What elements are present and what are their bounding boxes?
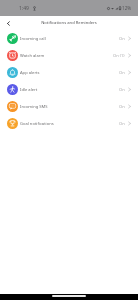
staticText: Incoming call: [20, 36, 46, 42]
staticText: On: [119, 121, 125, 127]
staticText: App alerts: [20, 70, 40, 76]
staticText: Goal notifications: [20, 121, 54, 127]
button[interactable]: Watch alarm: [0, 47, 138, 64]
staticText: On (1): [113, 53, 125, 59]
button[interactable]: Back: [2, 17, 15, 30]
staticText: Watch alarm: [20, 53, 45, 59]
staticText: 12%: [122, 5, 132, 11]
staticText: Incoming SMS: [20, 104, 48, 110]
button[interactable]: Incoming SMS: [0, 98, 138, 115]
button[interactable]: Incoming call: [0, 30, 138, 47]
button[interactable]: Goal notifications: [0, 115, 138, 132]
staticText: On: [119, 36, 125, 42]
staticText: Idle alert: [20, 87, 38, 93]
staticText: Notifications and Reminders: [41, 20, 97, 26]
staticText: On: [119, 87, 125, 93]
staticText: On: [119, 104, 125, 110]
staticText: On: [119, 70, 125, 76]
staticText: 1:49: [19, 5, 29, 12]
button[interactable]: Idle alert: [0, 81, 138, 98]
button[interactable]: App alerts: [0, 64, 138, 81]
